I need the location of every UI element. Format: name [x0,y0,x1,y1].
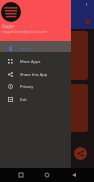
button[interactable]: Back [68,169,80,181]
button[interactable]: Home [0,41,71,52]
staticText: Exit [20,97,27,102]
staticText: Privacy [20,84,34,89]
button[interactable]: More Apps [0,55,71,67]
button[interactable]: Privacy [0,80,71,92]
staticText: Wallpaper [9,59,32,65]
staticText: Home [20,46,32,51]
button[interactable]: Favorites [85,19,90,24]
staticText: Share this App [20,72,48,77]
staticText: Wallpapers [17,11,44,18]
staticText: Sagar [2,23,15,29]
button[interactable]: Profile picture [1,2,21,22]
staticText: More Apps [20,59,41,64]
button[interactable]: Open navigation drawer [3,9,14,20]
button[interactable]: Share [74,147,87,160]
button[interactable]: Recent apps [15,169,27,181]
button[interactable]: Wallpaper [6,84,88,132]
button[interactable]: Home [41,169,53,181]
staticText: sagarkhatri@gmail.com [2,29,47,34]
button[interactable]: Wallpaper [6,31,88,80]
button[interactable]: Exit [0,93,71,105]
button[interactable]: Share this App [0,68,71,80]
